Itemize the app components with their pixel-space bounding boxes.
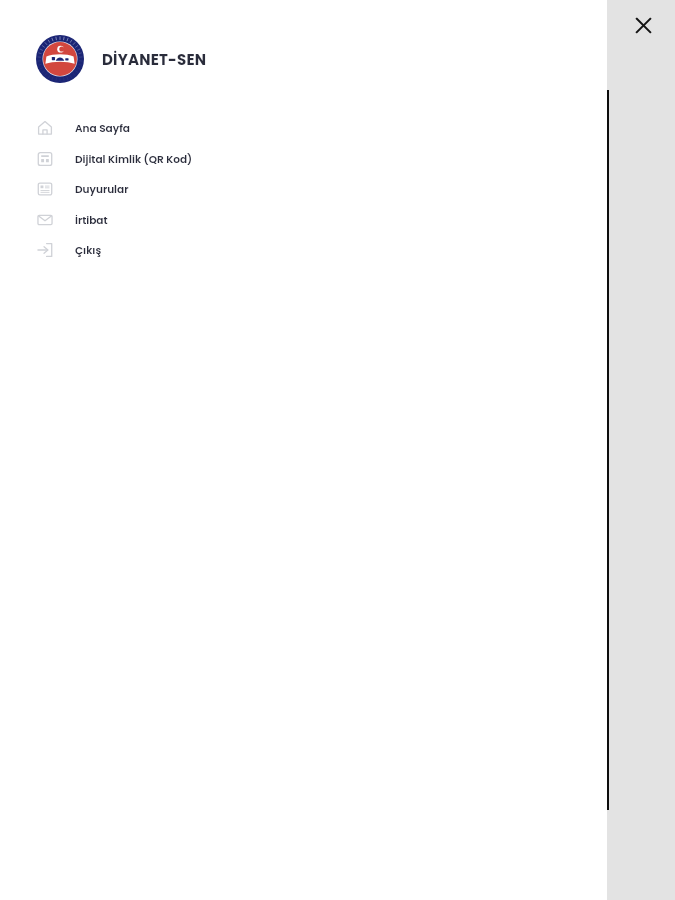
other: DİYANET-SEN logo bbox=[36, 35, 84, 83]
staticText: DİYANET-SEN bbox=[102, 49, 207, 70]
button[interactable]: Close drawer bbox=[620, 2, 666, 48]
staticText: Duyurular bbox=[75, 182, 129, 197]
button[interactable]: Dijital Kimlik (QR Kod) bbox=[0, 144, 607, 174]
button[interactable]: Ana Sayfa bbox=[0, 113, 607, 143]
staticText: Ana Sayfa bbox=[75, 121, 130, 136]
button[interactable]: DİYANET-SEN logo bbox=[36, 35, 207, 83]
button[interactable]: Duyurular bbox=[0, 174, 607, 204]
button[interactable]: Çıkış bbox=[0, 235, 607, 265]
staticText: İrtibat bbox=[75, 213, 108, 228]
staticText: Çıkış bbox=[75, 243, 102, 258]
button[interactable]: İrtibat bbox=[0, 205, 607, 235]
staticText: Dijital Kimlik (QR Kod) bbox=[75, 152, 193, 167]
